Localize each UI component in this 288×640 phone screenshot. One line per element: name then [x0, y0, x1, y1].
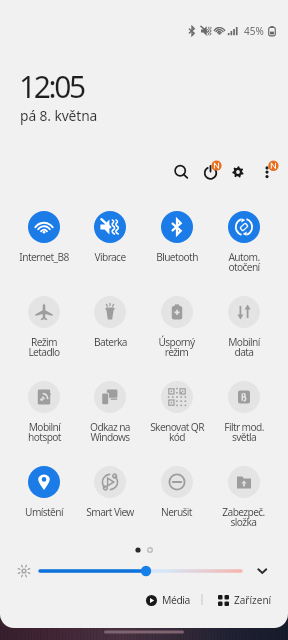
staticText: Úsporný režim	[158, 335, 195, 359]
staticText: Zařízení	[234, 593, 272, 607]
staticText: Mobilní data	[228, 335, 260, 359]
button[interactable]: Média	[142, 590, 194, 610]
button[interactable]: Expand	[252, 562, 272, 582]
staticText: Smart View	[86, 505, 134, 519]
button[interactable]: Umístění	[11, 466, 77, 519]
staticText: Internet_B8	[19, 250, 69, 264]
button[interactable]: Filtr mod. světla	[210, 381, 277, 444]
button[interactable]: More options	[254, 159, 282, 187]
button[interactable]: Settings	[224, 159, 252, 187]
button[interactable]: Baterka	[77, 296, 143, 349]
button[interactable]: Vibrace	[77, 211, 143, 264]
button[interactable]: Zabezpeč. složka	[210, 466, 277, 529]
staticText: Umístění	[25, 505, 63, 519]
staticText: 45%	[244, 24, 264, 38]
button[interactable]: Nerušit	[143, 466, 210, 519]
button[interactable]: Power	[197, 159, 225, 187]
staticText: pá 8. května	[20, 106, 98, 125]
staticText: Zabezpeč. složka	[222, 505, 265, 529]
button[interactable]: Autom. otočení	[210, 211, 277, 274]
button[interactable]: Mobilní hotspot	[11, 381, 77, 444]
staticText: Autom. otočení	[228, 250, 260, 274]
button[interactable]: Zařízení	[214, 590, 276, 610]
button[interactable]: Smart View	[77, 466, 143, 519]
staticText: Baterka	[94, 335, 127, 349]
staticText: Filtr mod. světla	[224, 420, 264, 444]
button[interactable]: Internet_B8	[11, 211, 77, 264]
button[interactable]: Odkaz na Windows	[77, 381, 143, 444]
button[interactable]: Skenovat QR kód	[143, 381, 210, 444]
button[interactable]: Úsporný režim	[143, 296, 210, 359]
staticText: Mobilní hotspot	[28, 420, 61, 444]
staticText: Bluetooth	[156, 250, 198, 264]
staticText: Média	[162, 593, 190, 607]
button[interactable]: Mobilní data	[210, 296, 277, 359]
button[interactable]: Bluetooth	[143, 211, 210, 264]
staticText: Skenovat QR kód	[150, 420, 204, 444]
button[interactable]: Režim Letadlo	[11, 296, 77, 359]
staticText: Vibrace	[94, 250, 126, 264]
staticText: Nerušit	[161, 505, 192, 519]
staticText: Odkaz na Windows	[90, 420, 130, 444]
button[interactable]: Search	[167, 159, 195, 187]
staticText: 12:05	[19, 66, 84, 107]
staticText: Režim Letadlo	[28, 335, 60, 359]
